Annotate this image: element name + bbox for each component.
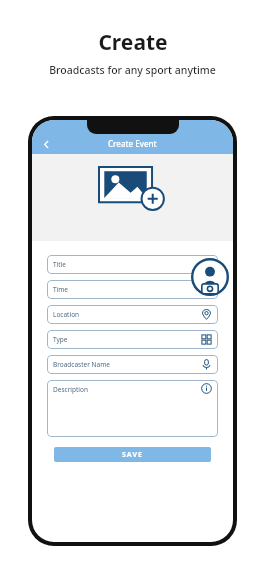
staticText: Time	[53, 285, 69, 294]
button[interactable]: Broadcaster Name	[47, 355, 218, 374]
button[interactable]: Title	[47, 255, 218, 274]
button[interactable]: Type	[47, 330, 218, 349]
button[interactable]: Add photo	[99, 167, 167, 210]
button[interactable]: Time	[47, 280, 218, 299]
button[interactable]: SAVE	[54, 447, 211, 462]
staticText: Create Event	[108, 138, 157, 149]
button[interactable]: Description	[47, 380, 218, 437]
staticText: Broadcasts for any sport anytime	[49, 63, 216, 77]
staticText: Broadcaster Name	[53, 360, 110, 369]
staticText: Description	[53, 385, 88, 394]
button[interactable]: Profile photo	[191, 258, 229, 296]
staticText: Create	[98, 28, 168, 57]
staticText: Title	[53, 260, 66, 269]
button[interactable]: Location	[47, 305, 218, 324]
button[interactable]: Back	[38, 136, 54, 152]
staticText: Type	[53, 335, 68, 344]
staticText: Location	[53, 310, 80, 319]
staticText: SAVE	[122, 450, 143, 460]
